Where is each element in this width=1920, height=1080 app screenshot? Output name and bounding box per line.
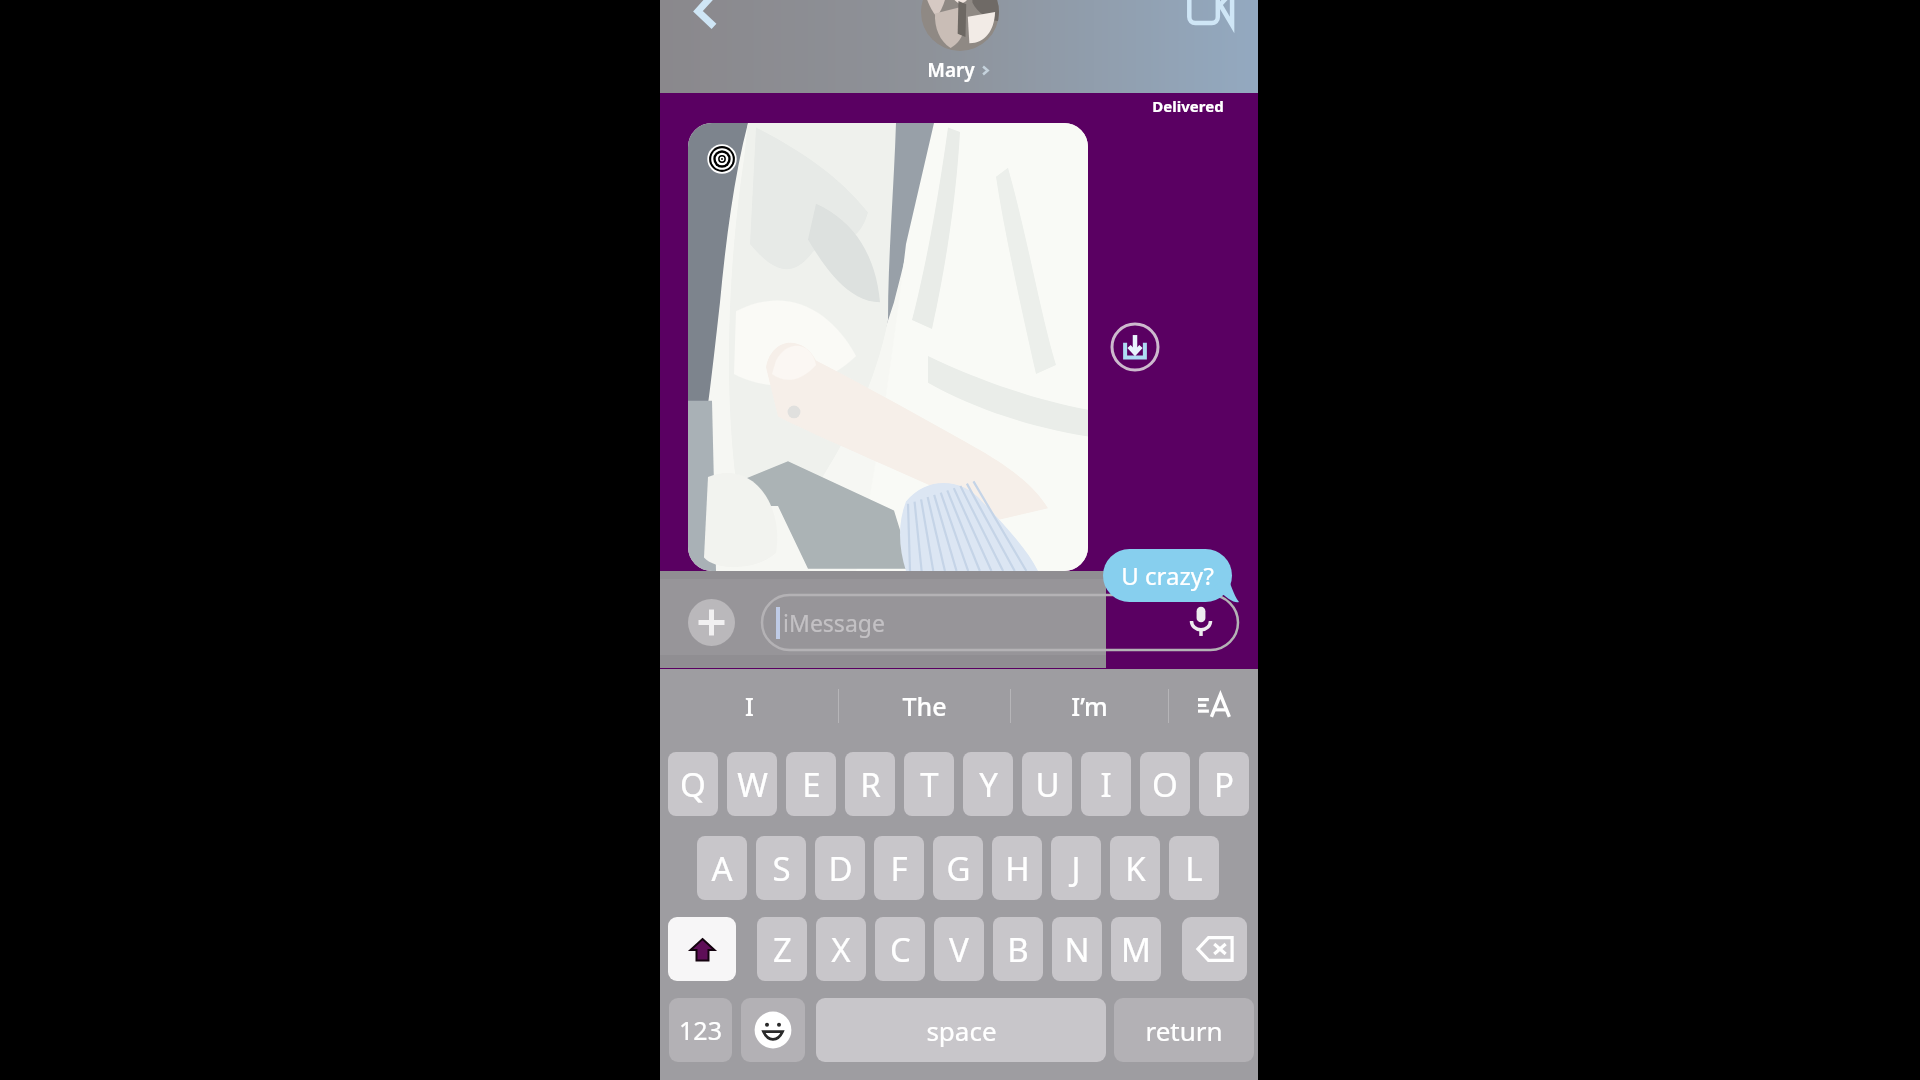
staticText: U crazy? [1121, 559, 1214, 592]
staticText: iMessage [783, 607, 885, 638]
button[interactable]: C [875, 917, 925, 981]
button[interactable]: B [993, 917, 1043, 981]
button[interactable]: Delivered [1152, 96, 1224, 116]
staticText: S [772, 846, 791, 891]
button[interactable]: U crazy? [1103, 549, 1239, 602]
button[interactable]: G [933, 836, 983, 900]
staticText: D [828, 846, 853, 891]
button[interactable]: X [816, 917, 866, 981]
button[interactable]: The [839, 669, 1010, 742]
staticText: space [926, 1013, 997, 1048]
staticText: K [1125, 846, 1146, 891]
button[interactable]: F [874, 836, 924, 900]
staticText: C [890, 927, 911, 972]
button[interactable]: L [1169, 836, 1219, 900]
button[interactable]: space [816, 998, 1106, 1062]
staticText: Q [680, 762, 706, 807]
staticText: X [831, 927, 851, 972]
button[interactable]: return [1114, 998, 1254, 1062]
button[interactable]: Dictate [1184, 604, 1218, 638]
staticText: Delivered [1152, 96, 1224, 116]
button[interactable]: Z [757, 917, 807, 981]
staticText: P [1214, 762, 1234, 807]
button[interactable]: E [786, 752, 836, 816]
staticText: Z [773, 927, 792, 972]
staticText: L [1185, 846, 1203, 891]
button[interactable]: Download photo [1109, 321, 1161, 373]
staticText: I [745, 689, 754, 723]
staticText: U [1035, 762, 1060, 807]
staticText: B [1007, 927, 1029, 972]
button[interactable]: Text formatting [1169, 669, 1258, 742]
button[interactable]: K [1110, 836, 1160, 900]
staticText: Y [979, 762, 998, 807]
button[interactable]: N [1052, 917, 1102, 981]
staticText: H [1005, 846, 1030, 891]
staticText: I’m [1071, 689, 1108, 723]
button[interactable]: S [756, 836, 806, 900]
staticText: T [920, 762, 939, 807]
staticText: I [1100, 762, 1112, 807]
button[interactable]: J [1051, 836, 1101, 900]
button[interactable]: A [697, 836, 747, 900]
staticText: M [1121, 927, 1151, 972]
button[interactable]: iMessage [762, 595, 1238, 650]
staticText: G [946, 846, 971, 891]
staticText: A [711, 846, 733, 891]
button[interactable]: P [1199, 752, 1249, 816]
button[interactable]: 123 [669, 998, 732, 1062]
button[interactable]: FaceTime video call [1187, 0, 1233, 24]
button[interactable]: O [1140, 752, 1190, 816]
staticText: Mary [927, 57, 975, 83]
button[interactable]: I’m [1011, 669, 1168, 742]
button[interactable]: Backspace [1182, 917, 1247, 981]
staticText: R [860, 762, 881, 807]
button[interactable]: R [845, 752, 895, 816]
button[interactable]: I [660, 669, 838, 742]
staticText: J [1071, 846, 1081, 891]
button[interactable]: M [1111, 917, 1161, 981]
button[interactable]: H [992, 836, 1042, 900]
staticText: E [802, 762, 821, 807]
button[interactable]: Back [682, 0, 722, 28]
button[interactable]: Emoji keyboard [741, 998, 805, 1062]
button[interactable]: Q [668, 752, 718, 816]
staticText: V [949, 927, 969, 972]
button[interactable]: T [904, 752, 954, 816]
button[interactable]: Shift [668, 917, 736, 981]
button[interactable]: Photo message [688, 123, 1088, 571]
staticText: The [902, 689, 947, 723]
button[interactable]: V [934, 917, 984, 981]
button[interactable]: Y [963, 752, 1013, 816]
staticText: W [737, 762, 768, 807]
button[interactable]: Mary profile photo [921, 0, 999, 51]
button[interactable]: D [815, 836, 865, 900]
button[interactable]: W [727, 752, 777, 816]
staticText: F [890, 846, 908, 891]
staticText: return [1145, 1013, 1223, 1048]
button[interactable]: I [1081, 752, 1131, 816]
staticText: 123 [679, 1013, 722, 1047]
button[interactable]: U [1022, 752, 1072, 816]
staticText: O [1152, 762, 1178, 807]
button[interactable]: Add attachment [688, 599, 735, 646]
staticText: N [1064, 927, 1090, 972]
